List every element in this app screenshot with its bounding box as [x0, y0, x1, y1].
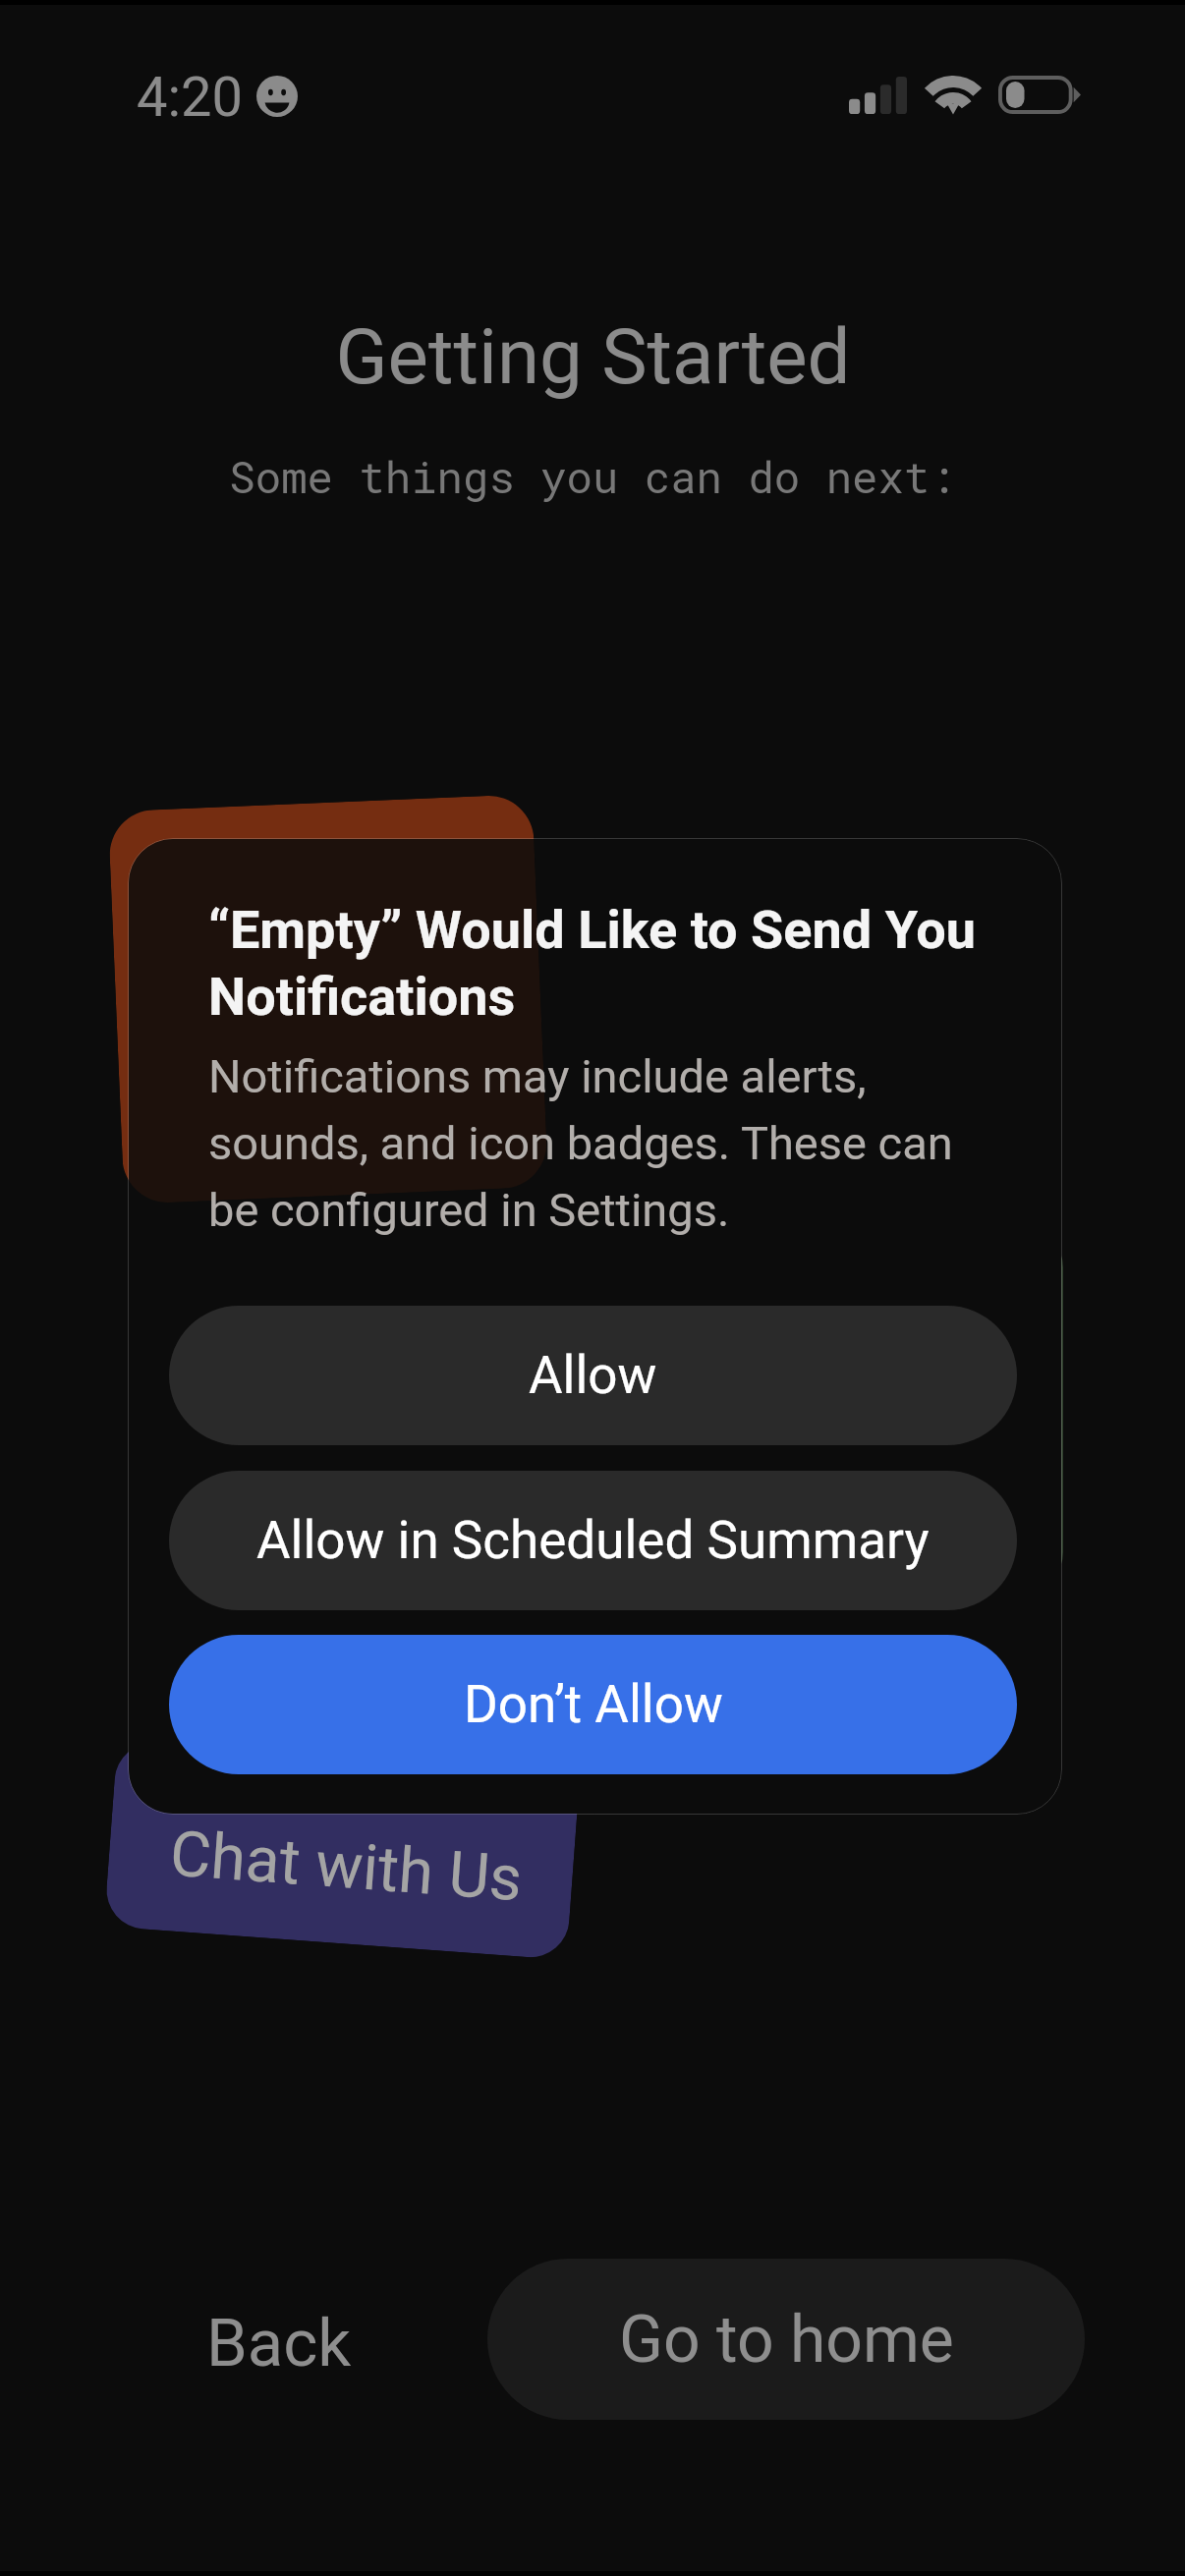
- staticText: Getting Started: [335, 312, 851, 402]
- staticText: “Empty” Would Like to Send You Notificat…: [208, 899, 1017, 1028]
- staticText: Back: [206, 2305, 352, 2382]
- button[interactable]: Allow: [169, 1306, 1017, 1445]
- staticText: Go to home: [619, 2302, 954, 2378]
- staticText: Allow: [529, 1345, 657, 1406]
- staticText: 4:20: [137, 65, 243, 130]
- staticText: Notifications may include alerts, sounds…: [208, 1049, 994, 1237]
- button[interactable]: Allow in Scheduled Summary: [169, 1471, 1017, 1610]
- button[interactable]: Go to home: [487, 2259, 1085, 2420]
- staticText: Don’t Allow: [464, 1674, 723, 1735]
- button[interactable]: Orange card: [108, 794, 548, 1204]
- staticText: Chat with Us: [168, 1817, 525, 1916]
- staticText: Some things you can do next:: [229, 448, 956, 505]
- button[interactable]: Chat with Us: [104, 1740, 580, 1960]
- button[interactable]: Green card: [688, 1228, 1063, 1592]
- button[interactable]: Don’t Allow: [169, 1635, 1017, 1774]
- button[interactable]: Back: [177, 2283, 381, 2404]
- staticText: Allow in Scheduled Summary: [256, 1510, 930, 1571]
